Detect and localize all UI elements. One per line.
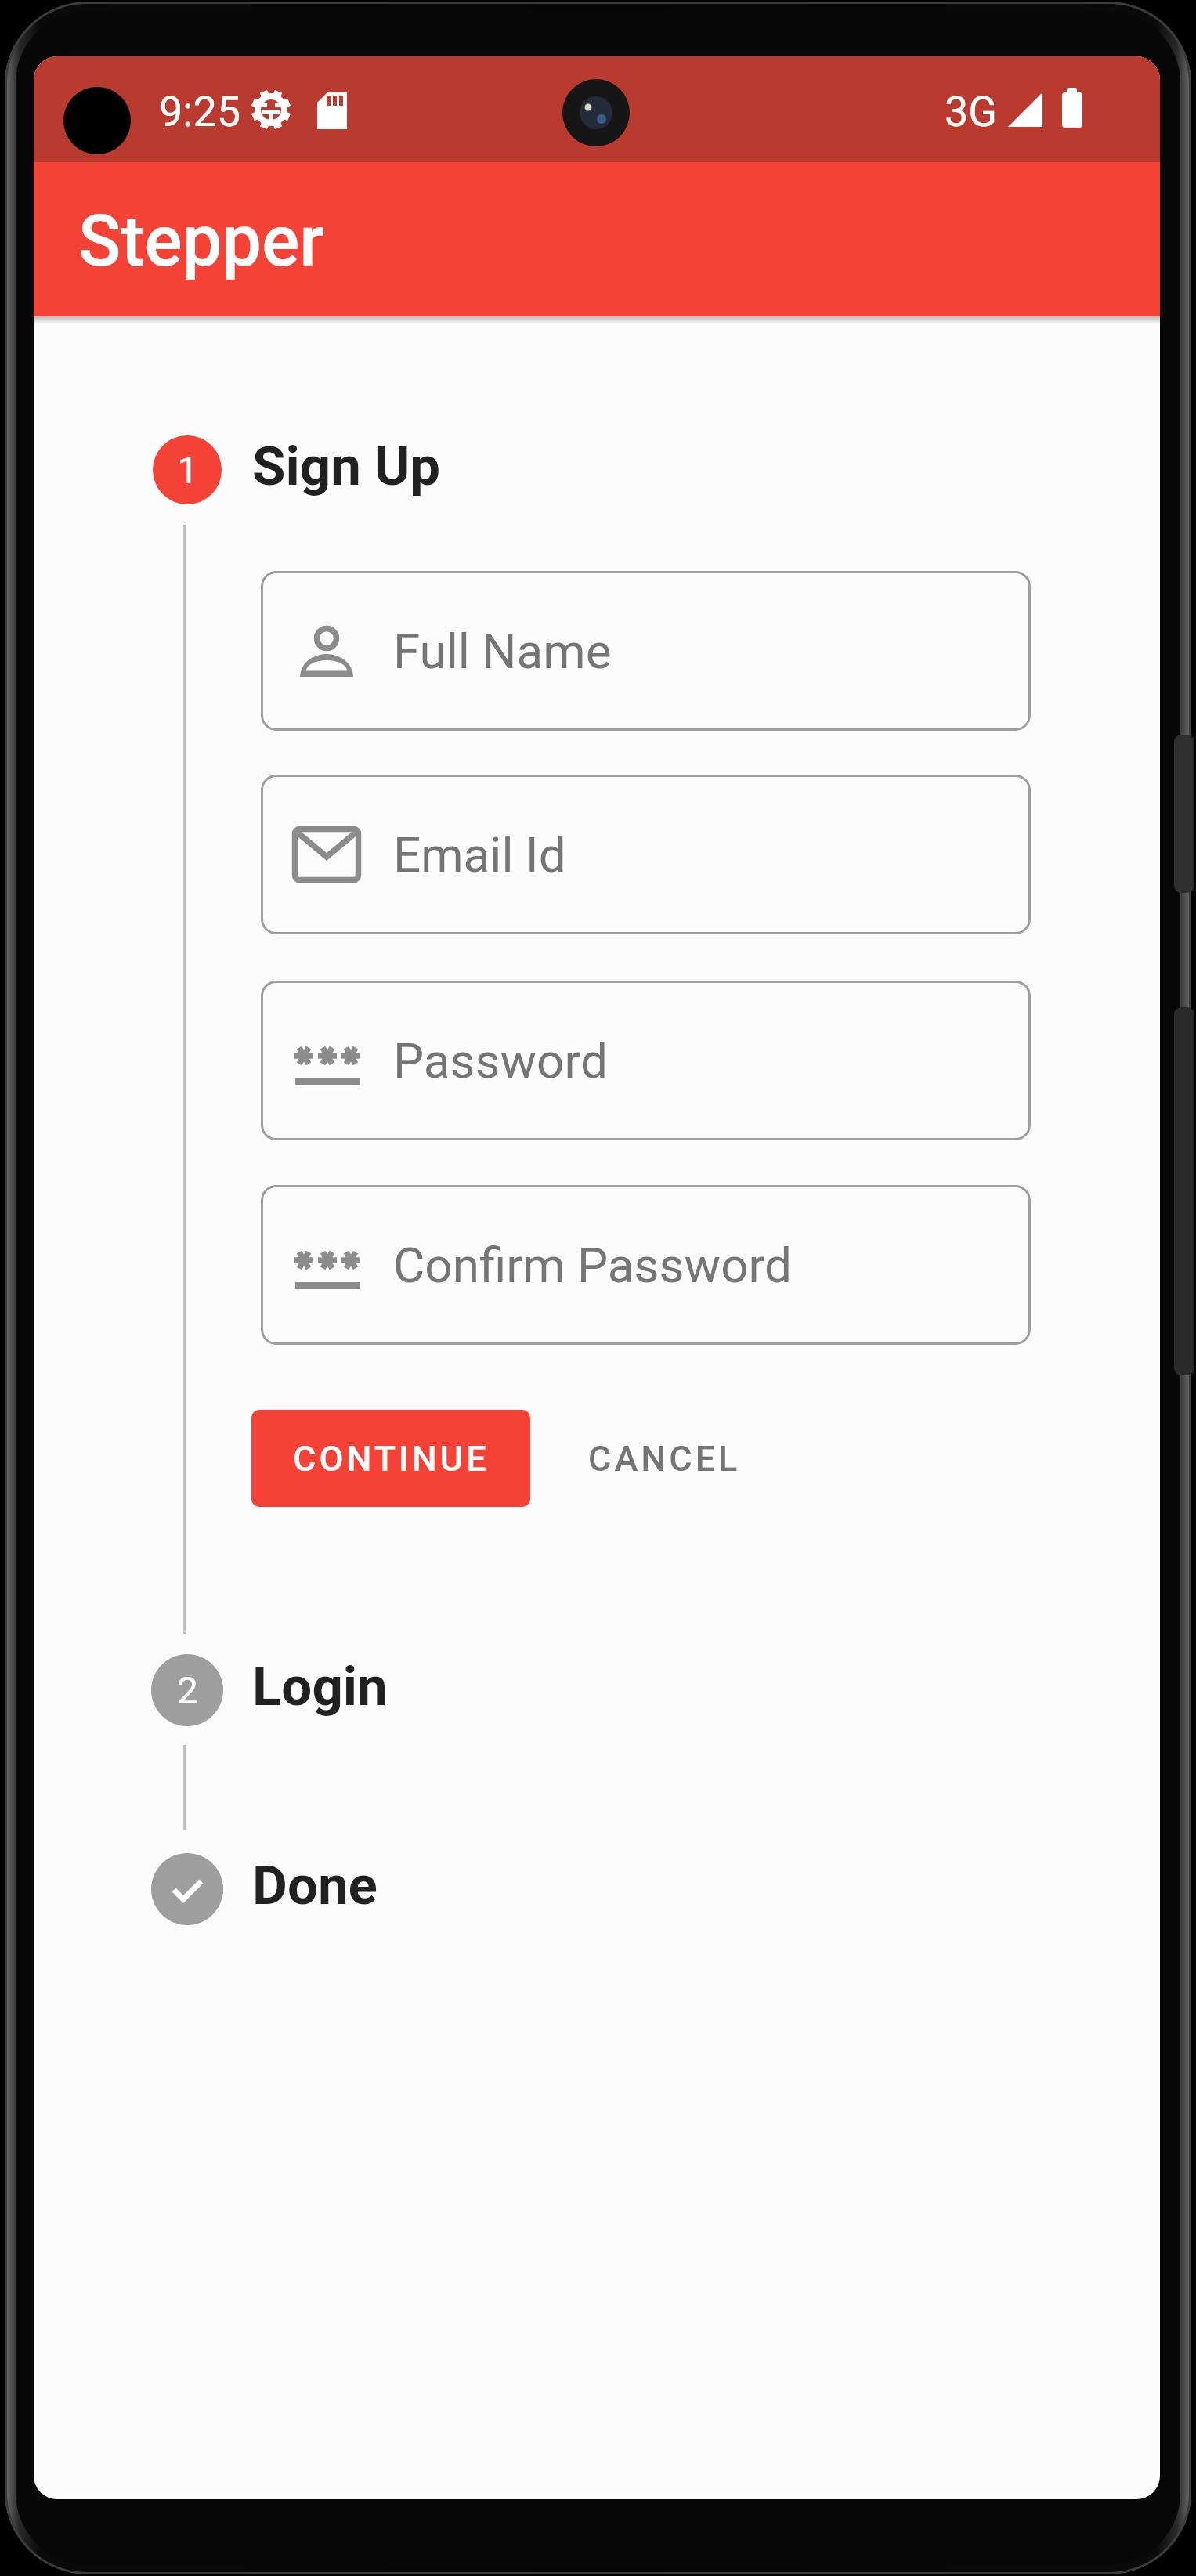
button[interactable]: Confirm Password <box>261 1185 1031 1345</box>
staticText: 2 <box>177 1668 198 1712</box>
button[interactable]: 1 <box>153 435 701 504</box>
staticText: Sign Up <box>252 435 441 498</box>
staticText: Login <box>252 1655 388 1718</box>
staticText: CONTINUE <box>293 1438 490 1479</box>
staticText: Full Name <box>393 623 612 680</box>
staticText: CANCEL <box>588 1438 741 1479</box>
button[interactable] <box>151 1853 699 1925</box>
staticText: Email Id <box>393 826 566 883</box>
staticText: Password <box>393 1032 608 1089</box>
button[interactable]: 2 <box>151 1654 699 1726</box>
staticText: 9:25 <box>159 87 241 136</box>
button[interactable]: Password <box>261 981 1031 1140</box>
button[interactable]: Full Name <box>261 571 1031 731</box>
button[interactable]: CONTINUE <box>251 1410 530 1507</box>
staticText: Done <box>252 1854 378 1917</box>
staticText: 1 <box>177 448 198 492</box>
staticText: 3G <box>945 87 998 136</box>
staticText: Confirm Password <box>393 1237 792 1294</box>
staticText: Stepper <box>78 201 324 283</box>
button[interactable]: CANCEL <box>574 1410 754 1507</box>
button[interactable]: Email Id <box>261 775 1031 934</box>
